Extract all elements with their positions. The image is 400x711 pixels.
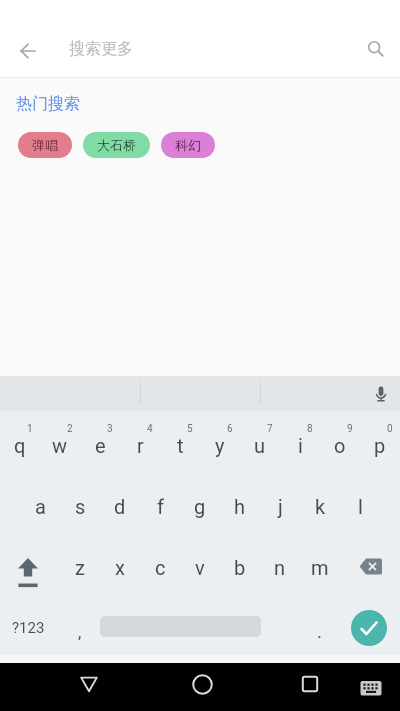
staticText: ?123: [12, 619, 45, 637]
staticText: t: [177, 434, 184, 457]
staticText: 8: [307, 423, 313, 435]
button[interactable]: [179, 663, 225, 711]
staticText: s: [75, 495, 86, 518]
button[interactable]: b: [220, 533, 260, 594]
button[interactable]: z: [60, 533, 100, 594]
button[interactable]: k: [300, 472, 340, 533]
button[interactable]: q: [0, 411, 40, 472]
staticText: a: [35, 495, 46, 518]
staticText: 2: [67, 423, 73, 435]
button[interactable]: [348, 24, 400, 77]
button[interactable]: [340, 533, 400, 594]
staticText: 热门搜索: [16, 94, 80, 114]
staticText: 6: [227, 423, 233, 435]
button[interactable]: ?123: [0, 594, 56, 655]
staticText: b: [234, 556, 246, 579]
staticText: w: [52, 434, 68, 457]
staticText: k: [315, 495, 326, 518]
button[interactable]: g: [180, 472, 220, 533]
staticText: p: [374, 434, 386, 457]
button[interactable]: [66, 663, 112, 711]
button[interactable]: a: [20, 472, 60, 533]
button[interactable]: j: [260, 472, 300, 533]
button[interactable]: i: [280, 411, 320, 472]
button[interactable]: r: [120, 411, 160, 472]
button[interactable]: 搜索更多: [54, 24, 348, 77]
button[interactable]: s: [60, 472, 100, 533]
button[interactable]: [351, 610, 387, 646]
button[interactable]: h: [220, 472, 260, 533]
staticText: z: [75, 556, 85, 579]
button[interactable]: ,: [64, 594, 96, 655]
staticText: 7: [267, 423, 273, 435]
button[interactable]: 弹唱: [18, 132, 72, 158]
staticText: f: [157, 495, 164, 518]
button[interactable]: [362, 376, 400, 411]
button[interactable]: t: [160, 411, 200, 472]
button[interactable]: l: [340, 472, 380, 533]
staticText: 9: [347, 423, 353, 435]
button[interactable]: p: [360, 411, 400, 472]
button[interactable]: [351, 663, 391, 711]
button[interactable]: [0, 24, 54, 77]
staticText: u: [254, 434, 266, 457]
button[interactable]: f: [140, 472, 180, 533]
staticText: 科幻: [175, 137, 201, 153]
staticText: l: [358, 495, 363, 518]
button[interactable]: m: [300, 533, 340, 594]
staticText: ,: [78, 622, 82, 642]
staticText: y: [215, 434, 225, 457]
button[interactable]: x: [100, 533, 140, 594]
button[interactable]: y: [200, 411, 240, 472]
staticText: 4: [147, 423, 153, 435]
staticText: .: [317, 620, 323, 642]
staticText: j: [278, 495, 283, 518]
staticText: o: [334, 434, 346, 457]
button[interactable]: w: [40, 411, 80, 472]
staticText: 0: [387, 423, 393, 435]
button[interactable]: .: [303, 594, 336, 655]
staticText: m: [311, 556, 329, 579]
staticText: d: [114, 495, 126, 518]
staticText: 1: [27, 423, 33, 435]
staticText: x: [115, 556, 125, 579]
staticText: h: [234, 495, 246, 518]
staticText: q: [14, 434, 26, 457]
button[interactable]: 科幻: [161, 132, 215, 158]
button[interactable]: n: [260, 533, 300, 594]
button[interactable]: [0, 533, 60, 594]
button[interactable]: [287, 663, 333, 711]
staticText: 大石桥: [97, 137, 136, 153]
button[interactable]: e: [80, 411, 120, 472]
staticText: i: [298, 434, 303, 457]
button[interactable]: 大石桥: [83, 132, 150, 158]
staticText: g: [194, 495, 206, 518]
button[interactable]: v: [180, 533, 220, 594]
staticText: 3: [107, 423, 113, 435]
button[interactable]: o: [320, 411, 360, 472]
staticText: c: [155, 556, 166, 579]
staticText: v: [195, 556, 205, 579]
staticText: n: [274, 556, 286, 579]
button[interactable]: c: [140, 533, 180, 594]
staticText: e: [95, 434, 106, 457]
staticText: r: [137, 434, 144, 457]
button[interactable]: u: [240, 411, 280, 472]
button[interactable]: d: [100, 472, 140, 533]
staticText: 搜索更多: [69, 39, 133, 59]
staticText: 弹唱: [32, 137, 58, 153]
staticText: 5: [187, 423, 193, 435]
